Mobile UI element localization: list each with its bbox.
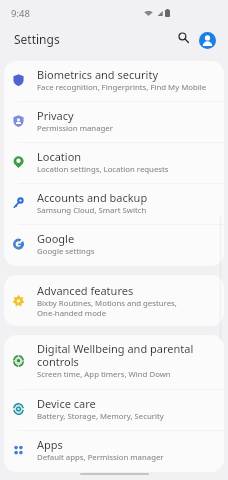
button[interactable]: Google: [4, 225, 224, 266]
button[interactable]: Apps: [4, 431, 224, 472]
staticText: Face recognition, Fingerprints, Find My …: [37, 82, 207, 93]
staticText: Screen time, App timers, Wind Down: [37, 369, 171, 380]
button[interactable]: Biometrics and security: [4, 61, 224, 102]
button[interactable]: Privacy: [4, 102, 224, 143]
button[interactable]: Search: [171, 28, 195, 52]
staticText: Digital Wellbeing and parental controls: [37, 341, 194, 369]
staticText: Location settings, Location requests: [37, 164, 169, 175]
staticText: Battery, Storage, Memory, Security: [37, 411, 164, 422]
staticText: Location: [37, 149, 82, 164]
staticText: Advanced features: [37, 283, 134, 298]
staticText: Privacy: [37, 108, 74, 123]
staticText: Google: [37, 231, 75, 246]
staticText: Samsung Cloud, Smart Switch: [37, 205, 147, 216]
button[interactable]: Digital Wellbeing and parental controls: [4, 335, 224, 390]
staticText: Biometrics and security: [37, 67, 158, 82]
button[interactable]: Account: [195, 28, 219, 52]
staticText: Default apps, Permission manager: [37, 452, 164, 463]
button[interactable]: Accounts and backup: [4, 184, 224, 225]
staticText: Permission manager: [37, 123, 113, 134]
staticText: Bixby Routines, Motions and gestures, On…: [37, 298, 177, 318]
button[interactable]: Location: [4, 143, 224, 184]
staticText: Settings: [14, 31, 60, 47]
staticText: Accounts and backup: [37, 190, 148, 205]
button[interactable]: Device care: [4, 390, 224, 431]
staticText: 9:48: [11, 7, 30, 20]
staticText: Google settings: [37, 246, 95, 257]
staticText: Device care: [37, 396, 96, 411]
button[interactable]: Advanced features: [4, 275, 224, 326]
staticText: Apps: [37, 437, 63, 452]
